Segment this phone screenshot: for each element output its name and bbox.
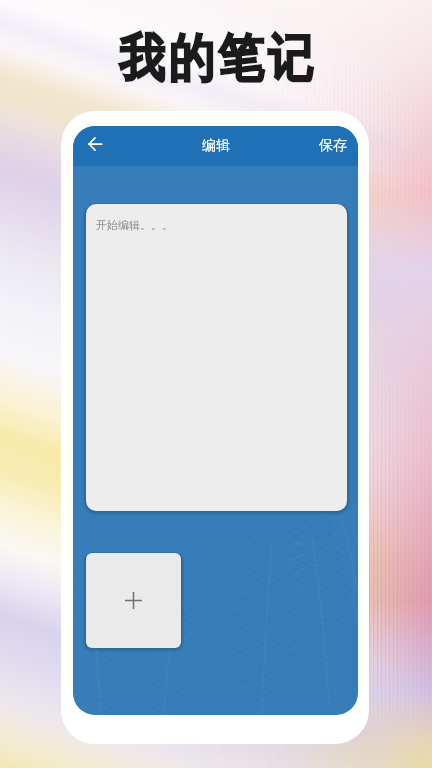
button[interactable]: Back (73, 126, 113, 166)
staticText: 保存 (319, 137, 347, 155)
staticText: 我的笔记 (117, 27, 315, 92)
button[interactable]: Add image (86, 553, 181, 648)
button[interactable]: 保存 (308, 128, 358, 164)
staticText: 开始编辑。。。 (96, 218, 173, 232)
staticText: 编辑 (202, 137, 230, 155)
button[interactable]: 开始编辑。。。 (86, 204, 347, 511)
